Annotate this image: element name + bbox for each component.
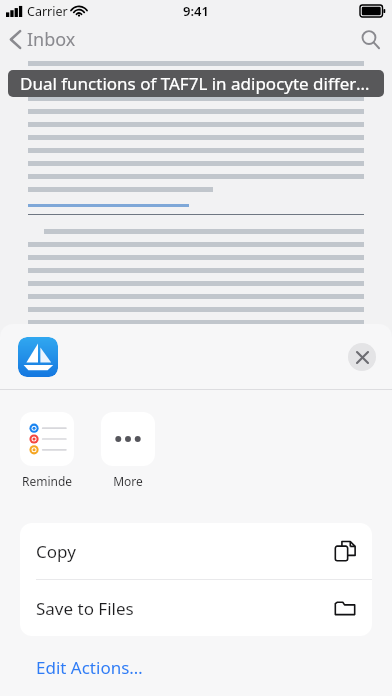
staticText: Edit Actions… — [36, 656, 143, 679]
button[interactable]: Copy — [20, 523, 372, 579]
staticText: Save to Files — [36, 597, 134, 620]
staticText: Inbox — [27, 27, 76, 52]
button[interactable]: Close — [348, 343, 376, 371]
staticText: Copy — [36, 540, 76, 563]
staticText: Carrier — [27, 3, 68, 20]
staticText: 9:41 — [183, 2, 209, 20]
button[interactable]: Inbox — [0, 23, 84, 56]
button[interactable]: Search — [349, 24, 392, 55]
button[interactable]: More — [101, 412, 155, 489]
staticText: More — [113, 473, 143, 489]
button[interactable]: Reminders — [20, 412, 74, 489]
staticText: Dual functions of TAF7L in adipocyte dif… — [20, 72, 372, 95]
staticText: Reminders — [20, 473, 74, 489]
button[interactable]: Edit Actions… — [20, 646, 159, 689]
button[interactable]: Shared item — [18, 337, 58, 377]
button[interactable]: Dual functions of TAF7L in adipocyte dif… — [8, 70, 384, 97]
button[interactable]: Save to Files — [20, 580, 372, 636]
